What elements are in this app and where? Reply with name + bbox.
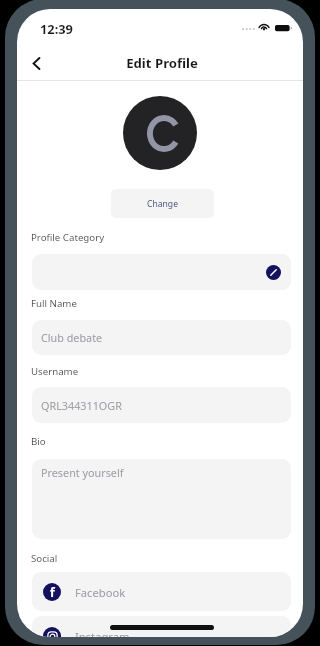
button[interactable]: Change <box>111 189 214 218</box>
staticText: Present yourself <box>41 465 124 480</box>
button[interactable]: Edit profile category <box>32 254 291 290</box>
other: Edit profile category <box>266 265 281 280</box>
staticText: Social <box>31 552 58 565</box>
staticText: 12:39 <box>40 20 73 37</box>
staticText: Profile Category <box>31 231 105 244</box>
staticText: Bio <box>31 435 46 448</box>
staticText: Club debate <box>41 330 103 345</box>
button[interactable]: Back <box>22 49 50 77</box>
staticText: Facebook <box>75 585 126 600</box>
staticText: QRL344311OGR <box>41 398 122 413</box>
button[interactable]: Instagram <box>32 616 291 637</box>
button[interactable]: QRL344311OGR <box>32 387 291 423</box>
staticText: Username <box>31 365 79 378</box>
staticText: Full Name <box>31 297 77 310</box>
staticText: Edit Profile <box>19 54 303 72</box>
staticText: Change <box>147 198 179 210</box>
button[interactable]: f <box>32 572 291 611</box>
staticText: Instagram <box>75 629 130 637</box>
button[interactable]: Club debate <box>32 320 291 355</box>
staticText: f <box>50 584 55 600</box>
button[interactable]: Present yourself <box>32 459 291 539</box>
